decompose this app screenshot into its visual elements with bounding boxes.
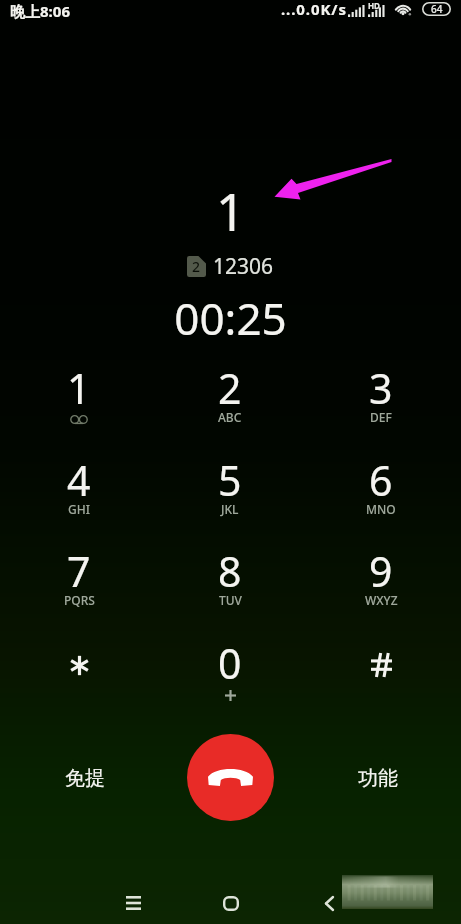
staticText: PQRS (64, 592, 95, 608)
button[interactable]: 5 (155, 436, 305, 528)
button[interactable]: 0 (155, 619, 305, 711)
staticText: 64 (431, 2, 443, 16)
staticText: GHI (68, 501, 90, 517)
button[interactable]: Back (289, 880, 369, 924)
staticText: 12306 (213, 252, 274, 281)
staticText: ABC (218, 409, 242, 425)
staticText: 功能 (358, 766, 398, 791)
staticText: DEF (370, 409, 392, 425)
staticText: 1 (67, 360, 91, 416)
staticText: 晚上8:06 (10, 1, 70, 21)
staticText: 3 (369, 360, 393, 416)
staticText: 4 (67, 452, 91, 508)
staticText: 00:25 (0, 288, 461, 348)
button[interactable]: 功能 (313, 738, 443, 818)
staticText: 5 (218, 452, 242, 508)
button[interactable]: 2 (155, 344, 305, 436)
staticText: ...0.0K/s (281, 0, 347, 19)
button[interactable]: 9 (306, 527, 456, 619)
button[interactable]: star (4, 619, 154, 711)
button[interactable]: Recents (61, 880, 205, 924)
staticText: HD (368, 0, 380, 11)
staticText: JKL (221, 501, 239, 517)
staticText: 8 (218, 543, 242, 599)
button[interactable]: 1 voicemail (4, 344, 154, 436)
button[interactable]: 7 (4, 527, 154, 619)
button[interactable]: 4 (4, 436, 154, 528)
staticText: MNO (366, 501, 396, 517)
staticText: 免提 (65, 766, 105, 791)
staticText: 7 (67, 543, 91, 599)
button[interactable]: 8 (155, 527, 305, 619)
button[interactable]: 6 (306, 436, 456, 528)
staticText: 9 (369, 543, 393, 599)
staticText: 1 (0, 176, 461, 245)
staticText: 6 (369, 452, 393, 508)
staticText: 0 (218, 635, 242, 691)
button[interactable]: 免提 (20, 738, 150, 818)
staticText: TUV (219, 592, 242, 608)
button[interactable]: pound (306, 619, 456, 711)
button[interactable]: 3 (306, 344, 456, 436)
button[interactable]: End call (187, 734, 274, 821)
button[interactable]: Home (183, 880, 279, 924)
staticText: 2 (218, 360, 242, 416)
staticText: 2 (192, 257, 201, 276)
staticText: WXYZ (365, 592, 398, 608)
